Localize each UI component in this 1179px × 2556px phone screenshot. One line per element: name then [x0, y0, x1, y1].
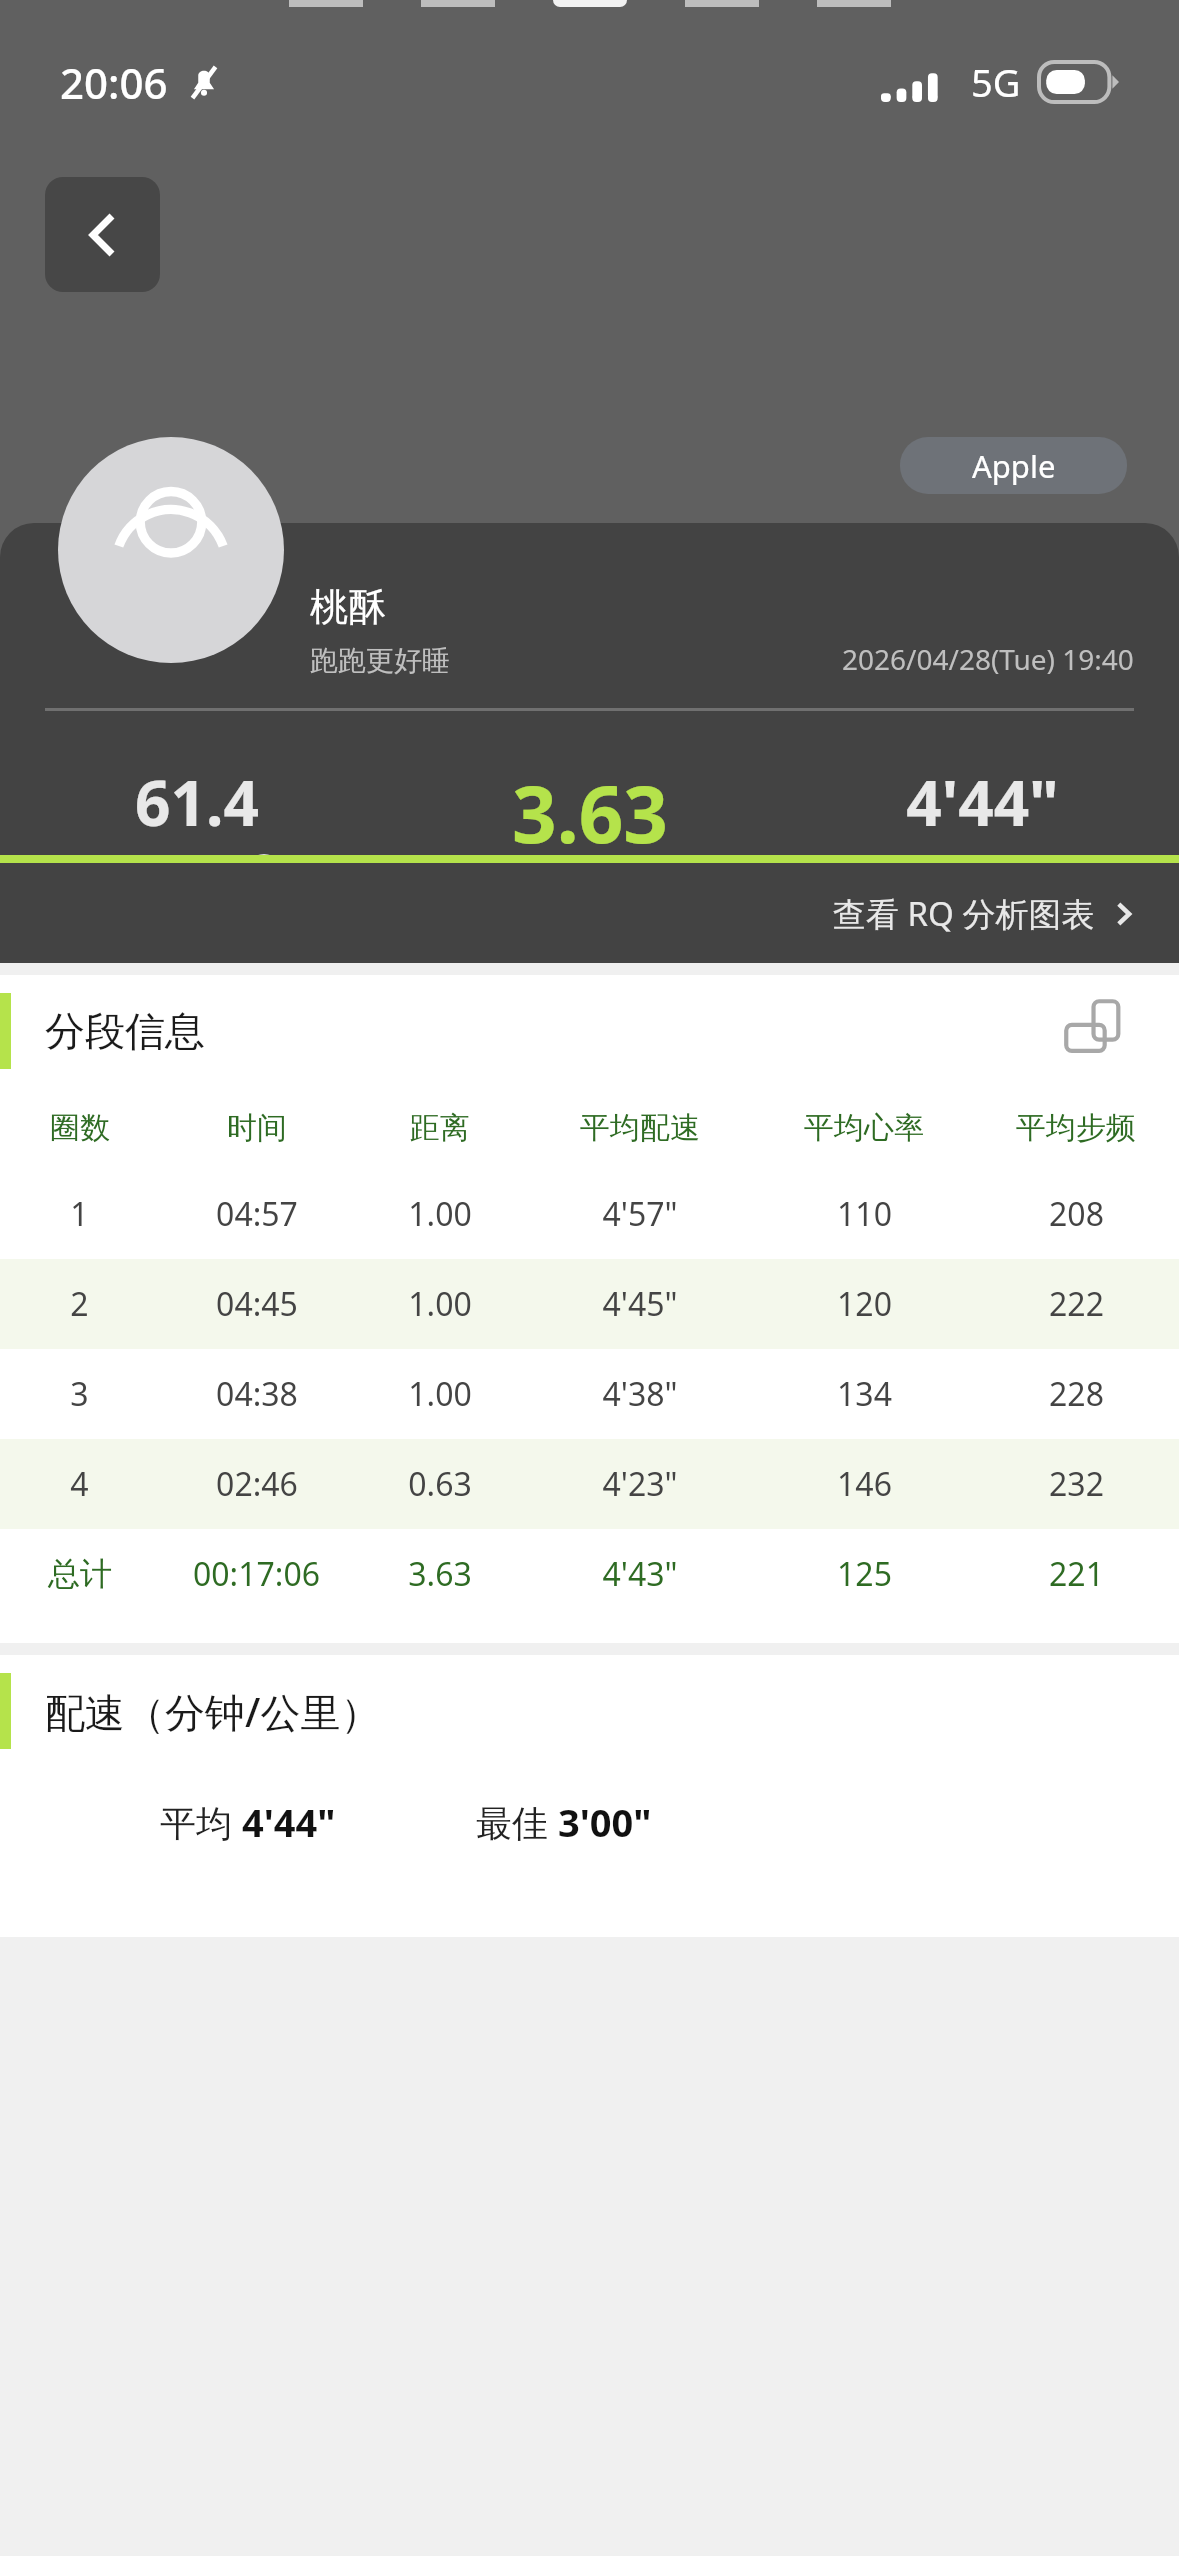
staticText: 4'38" — [602, 1372, 678, 1416]
staticText: 跑跑更好睡 — [310, 643, 450, 678]
staticText: 1.00 — [408, 1372, 472, 1416]
staticText: 221 — [1049, 1552, 1104, 1596]
staticText: 125 — [837, 1552, 892, 1596]
staticText: 时间 — [227, 1109, 287, 1147]
button[interactable]: 查看 RQ 分析图表 — [0, 863, 1179, 963]
staticText: 222 — [1049, 1282, 1104, 1326]
staticText: 110 — [837, 1192, 892, 1236]
staticText: 4'44" — [242, 1796, 336, 1848]
staticText: 228 — [1049, 1372, 1104, 1416]
staticText: 查看 RQ 分析图表 — [833, 891, 1095, 936]
staticText: 即时跑力 — [110, 856, 226, 893]
staticText: 0.63 — [408, 1462, 472, 1506]
staticText: 累计爬升(米) — [115, 1174, 278, 1214]
staticText: 1.00 — [408, 1192, 472, 1236]
button[interactable]: 61.4 — [0, 760, 393, 894]
staticText: Apple — [972, 445, 1056, 487]
staticText: 距离 — [410, 1109, 470, 1147]
staticText: 134 — [837, 1372, 892, 1416]
staticText: 04:38 — [216, 1372, 298, 1416]
staticText: 训练负荷 — [110, 1016, 226, 1053]
button[interactable]: 1.7 — [0, 920, 393, 1054]
staticText: 232 — [1049, 1462, 1104, 1506]
staticText: 平均步频 — [1016, 1109, 1136, 1147]
staticText: 61.4 — [135, 760, 259, 844]
button[interactable]: 总计 — [0, 1529, 1179, 1619]
staticText: 4'57" — [602, 1192, 678, 1236]
staticText: 最佳 — [476, 1798, 558, 1847]
staticText: 00:17:06 — [193, 1552, 320, 1596]
staticText: 0.95 — [528, 1080, 652, 1164]
staticText: 120 — [837, 1282, 892, 1326]
button[interactable]: Rotate screen — [1061, 996, 1131, 1066]
button[interactable]: 3 — [0, 1349, 1179, 1439]
staticText: 平均配速 — [580, 1109, 700, 1147]
button[interactable]: 分段信息 — [0, 975, 1179, 1087]
button[interactable]: 圈数 — [0, 1087, 1179, 1169]
staticText: 3.63 — [512, 760, 668, 866]
staticText: 4'45" — [602, 1282, 678, 1326]
staticText: 2 — [70, 1282, 89, 1326]
staticText: 平均 — [160, 1798, 242, 1847]
button[interactable]: 0 — [0, 1080, 393, 1214]
staticText: 3.63 — [408, 1552, 472, 1596]
staticText: 4'43" — [602, 1552, 678, 1596]
staticText: 3'00" — [558, 1796, 652, 1848]
button[interactable]: 222 — [786, 1080, 1179, 1211]
staticText: 圈数 — [50, 1109, 110, 1147]
staticText: 02:46 — [216, 1462, 298, 1506]
staticText: 208 — [1049, 1192, 1104, 1236]
button[interactable]: 1 — [0, 1169, 1179, 1259]
staticText: 146 — [837, 1462, 892, 1506]
staticText: 2026/04/28(Tue) 19:40 — [842, 640, 1134, 678]
button[interactable]: 3.63 — [393, 760, 786, 916]
staticText: 分段信息 — [45, 1006, 205, 1056]
staticText: 125 — [929, 920, 1036, 1004]
staticText: 20:06 — [60, 54, 168, 111]
button[interactable]: Help — [244, 854, 284, 894]
staticText: 04:45 — [216, 1282, 298, 1326]
staticText: 平均配速 — [925, 854, 1041, 891]
button[interactable] — [58, 437, 284, 663]
staticText: 3 — [70, 1372, 89, 1416]
staticText: 4'23" — [602, 1462, 678, 1506]
staticText: 1 — [70, 1192, 89, 1236]
button[interactable]: 125 — [786, 920, 1179, 1051]
staticText: 1.00 — [408, 1282, 472, 1326]
staticText: 04:57 — [216, 1192, 298, 1236]
button[interactable]: Back — [45, 177, 160, 292]
staticText: 222 — [929, 1080, 1036, 1164]
button[interactable]: 2 — [0, 1259, 1179, 1349]
staticText: 5G — [971, 56, 1021, 108]
staticText: 总计 — [48, 1554, 112, 1594]
staticText: 00:17:10 — [466, 920, 714, 1004]
staticText: 配速（分钟/公里） — [45, 1684, 381, 1739]
staticText: 4'44" — [906, 760, 1059, 844]
staticText: ? — [258, 857, 271, 892]
staticText: 平均心率 — [804, 1109, 924, 1147]
staticText: 平均步幅(米/步) — [488, 1174, 691, 1214]
button[interactable]: 4 — [0, 1439, 1179, 1529]
button[interactable]: 00:17:10 — [393, 920, 786, 1051]
staticText: 1.7 — [152, 920, 241, 1004]
staticText: 4 — [70, 1462, 89, 1506]
button[interactable]: 0.95 — [393, 1080, 786, 1214]
staticText: 桃酥 — [310, 583, 386, 631]
button[interactable]: 4'44" — [786, 760, 1179, 891]
button[interactable]: Apple — [900, 437, 1127, 494]
